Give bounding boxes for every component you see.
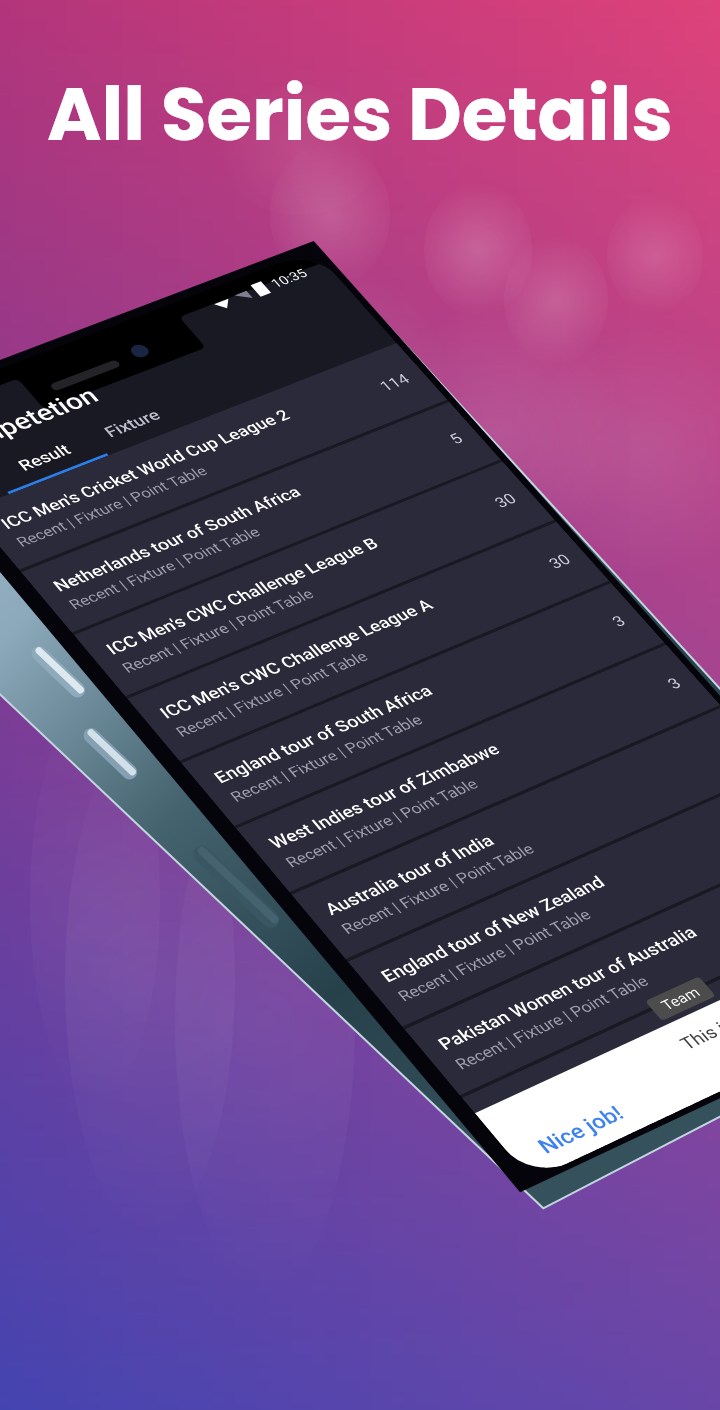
button[interactable]: England tour of New Zealand [0, 697, 440, 775]
staticText: Recent | Fixture | Point Table [16, 416, 205, 434]
staticText: Recent | Fixture | Point Table [16, 497, 205, 515]
button[interactable]: Fixture [140, 84, 218, 130]
button[interactable]: ICC Men's CWC Challenge League B [0, 292, 440, 370]
button[interactable]: Netherlands tour of South Africa [0, 211, 440, 289]
staticText: 3 [415, 646, 424, 665]
staticText: Recent | Fixture | Point Table [16, 821, 205, 839]
staticText: Fixture [153, 97, 206, 117]
staticText: 5 [415, 889, 424, 908]
button[interactable]: West Indies tour of Zimbabwe [0, 535, 440, 613]
button[interactable]: Result [40, 84, 140, 130]
staticText: South Africa tour of India [16, 877, 207, 897]
staticText: Recent | Fixture | Point Table [16, 659, 205, 677]
button[interactable]: ICC Men's CWC Challenge League A [0, 373, 440, 451]
button[interactable]: Nice job! [22, 918, 109, 945]
staticText: Recent | Fixture | Point Table [16, 740, 205, 758]
staticText: Team [200, 852, 235, 868]
staticText: New Zealand tour of Pakistan [16, 940, 240, 955]
button[interactable]: New Zealand tour of Pakistan [0, 940, 440, 955]
staticText: 30 [406, 403, 424, 422]
staticText: Netherlands tour of South Africa [16, 229, 262, 249]
staticText: Australia tour of India [16, 634, 180, 654]
staticText: ICC Men's CWC Challenge League A [16, 391, 288, 411]
staticText: ICC Men's Cricket World Cup League 2 [16, 148, 306, 168]
staticText: Recent | Fixture | Point Table [16, 335, 205, 353]
staticText: Recent | Fixture | Point Table [16, 254, 205, 272]
staticText: Recent | Fixture | Point Table [16, 902, 205, 920]
staticText: Recent | Fixture | Point Table [16, 173, 205, 191]
button[interactable]: England tour of South Africa [0, 454, 440, 532]
button[interactable]: ICC Men's Cricket World Cup League 2 [0, 130, 440, 208]
staticText: 3 [415, 808, 424, 827]
staticText: Recent | Fixture | Point Table [16, 578, 205, 596]
button[interactable]: Australia tour of India [0, 616, 440, 694]
staticText: Nice job! [26, 920, 105, 943]
staticText: West Indies tour of Zimbabwe [16, 553, 243, 573]
button[interactable]: Pakistan Women tour of Australia [0, 778, 440, 856]
staticText: England tour of New Zealand [16, 715, 236, 735]
staticText: All Series Details [47, 62, 673, 166]
staticText: 3 [415, 484, 424, 503]
staticText: Pakistan Women tour of Australia [16, 796, 271, 816]
staticText: 3 [415, 565, 424, 584]
staticText: ICC Men's CWC Challenge League B [16, 310, 287, 330]
staticText: England tour of South Africa [16, 472, 231, 492]
staticText: This is the list of all series [190, 891, 386, 911]
button[interactable]: South Africa tour of India [0, 859, 440, 937]
staticText: Result [66, 97, 115, 117]
